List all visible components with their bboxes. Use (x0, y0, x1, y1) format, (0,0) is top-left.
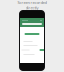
button[interactable] (24, 33, 39, 35)
staticText: directly (25, 5, 38, 10)
staticText: Screen recorded (17, 0, 46, 5)
